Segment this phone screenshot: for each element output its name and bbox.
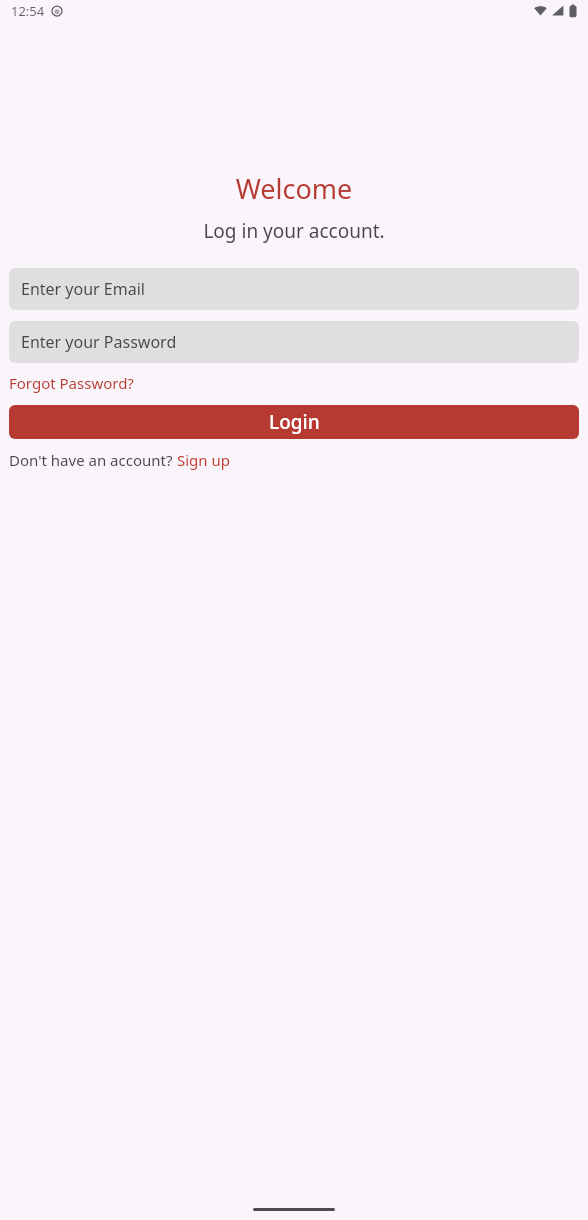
staticText: Log in your account.	[0, 218, 588, 244]
other: Battery	[569, 4, 577, 18]
staticText: Login	[269, 409, 320, 435]
button[interactable]: Login	[9, 405, 579, 439]
other: Wi-Fi	[534, 4, 547, 17]
button[interactable]: Forgot Password?	[9, 371, 134, 395]
staticText: Forgot Password?	[9, 373, 134, 393]
button[interactable]: Enter your Password	[9, 321, 579, 363]
button[interactable]: Sign up	[177, 450, 230, 470]
staticText: Enter your Password	[21, 331, 177, 353]
button[interactable]: Enter your Email	[9, 268, 579, 310]
staticText: Sign up	[177, 450, 230, 470]
staticText: Welcome	[0, 170, 588, 207]
staticText: Enter your Email	[21, 278, 145, 300]
staticText: 12:54	[11, 2, 45, 20]
other: Notification	[52, 6, 62, 16]
staticText: Don't have an account?	[9, 450, 177, 470]
other: Cellular signal	[551, 4, 564, 17]
